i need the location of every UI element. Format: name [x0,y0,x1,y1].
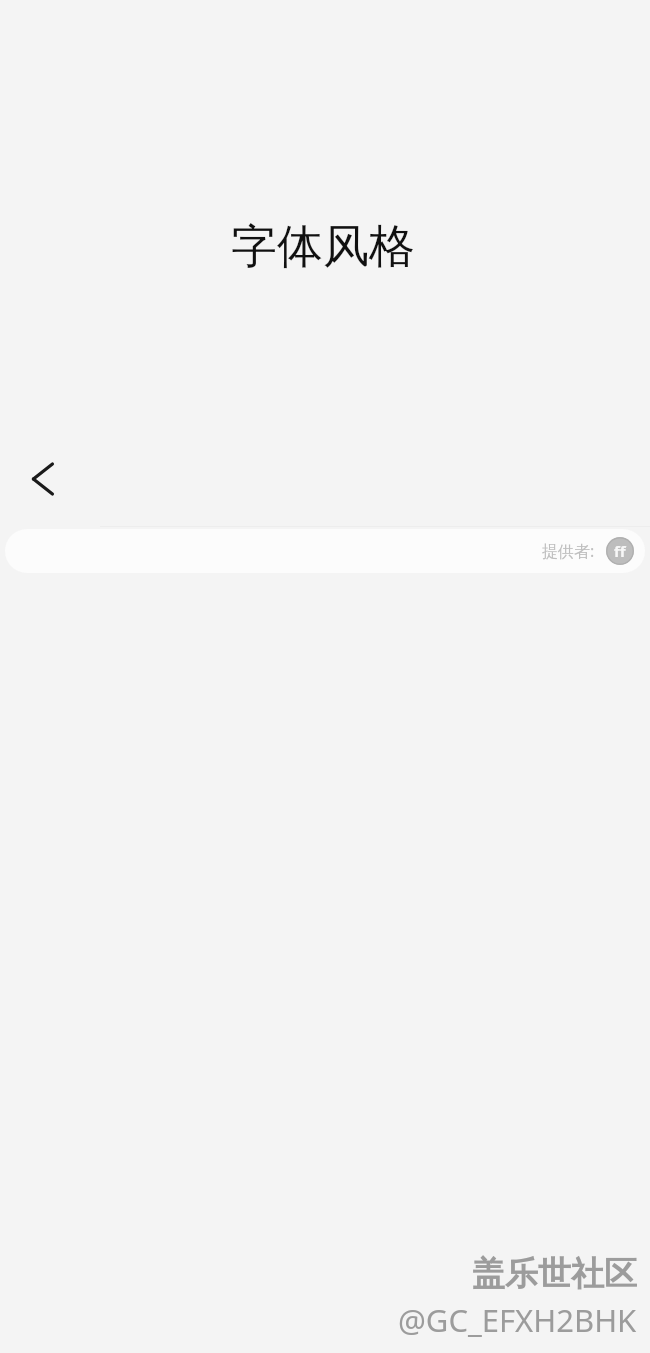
staticText: 盖乐世社区 [472,1253,637,1295]
button[interactable]: 提供者: [5,529,645,573]
button[interactable]: Back [14,446,80,512]
staticText: ff [614,541,626,561]
staticText: @GC_EFXH2BHK [398,1299,637,1341]
staticText: 字体风格 [0,218,648,276]
staticText: 提供者: [542,540,595,562]
